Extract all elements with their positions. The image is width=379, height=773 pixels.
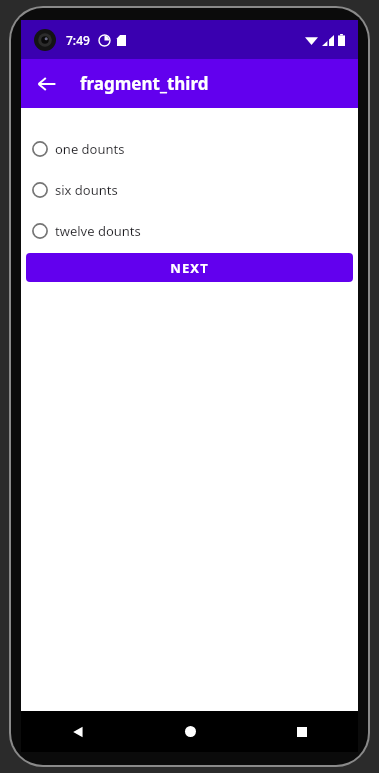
button[interactable]: Home [134, 711, 246, 752]
button[interactable]: Back [21, 711, 134, 752]
button[interactable]: Navigate up [27, 64, 67, 104]
staticText: 7:49 [66, 32, 90, 48]
staticText: fragment_third [80, 72, 209, 95]
staticText: one dounts [55, 140, 125, 158]
button[interactable]: twelve dounts [21, 210, 358, 251]
button[interactable]: NEXT [26, 253, 353, 282]
staticText: six dounts [55, 181, 118, 199]
button[interactable]: one dounts [21, 128, 358, 169]
button[interactable]: Recent apps [246, 711, 358, 752]
staticText: twelve dounts [55, 222, 141, 240]
button[interactable]: six dounts [21, 169, 358, 210]
staticText: NEXT [170, 259, 209, 277]
